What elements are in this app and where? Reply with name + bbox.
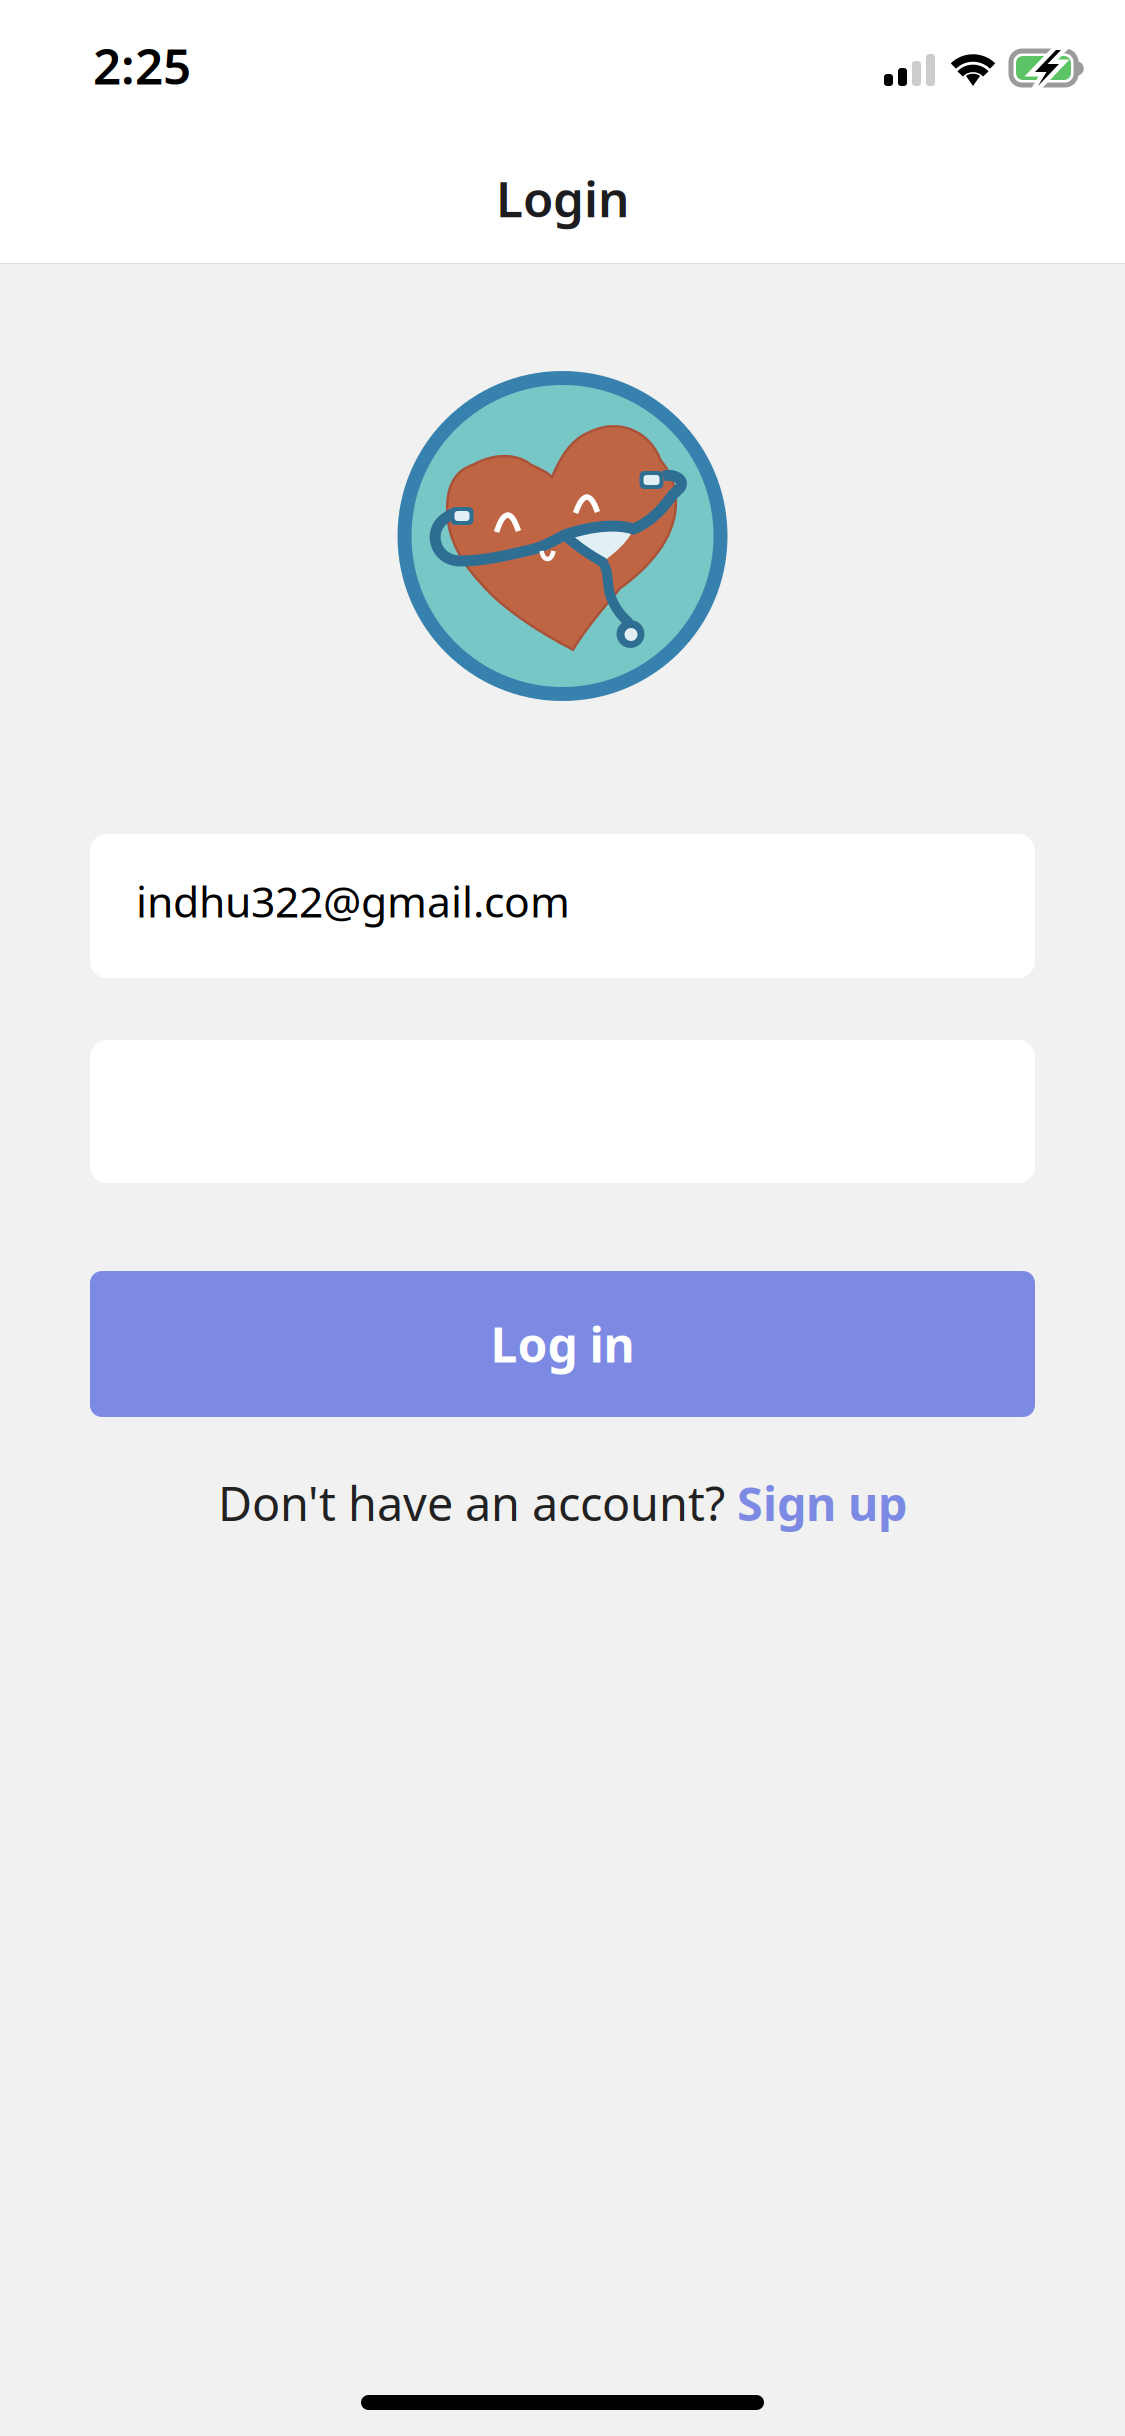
staticText: Sign up bbox=[737, 1472, 907, 1534]
staticText: indhu322@gmail.com bbox=[136, 873, 570, 929]
button[interactable]: Sign up bbox=[737, 1472, 907, 1534]
staticText: Log in bbox=[490, 1312, 634, 1376]
button[interactable]: Password bbox=[0, 1040, 1125, 1183]
staticText: Don't have an account? bbox=[218, 1472, 737, 1534]
button[interactable]: Log in bbox=[0, 1271, 1125, 1417]
staticText: Login bbox=[496, 165, 629, 231]
staticText: 2:25 bbox=[93, 32, 191, 98]
button[interactable]: Email address bbox=[0, 834, 1125, 978]
